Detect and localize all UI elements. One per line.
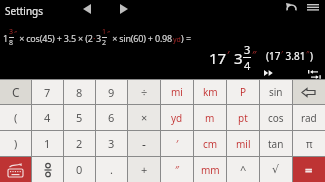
staticText: ′ [176,137,179,151]
button[interactable]: ′ [161,131,193,156]
staticText: π [306,137,313,151]
staticText: m [205,111,215,125]
staticText: ( [14,110,18,125]
staticText: ′ [281,49,283,60]
button[interactable]: = [293,157,325,182]
staticText: = [305,161,313,179]
staticText: (17 [266,49,281,63]
button[interactable] [264,70,273,76]
button[interactable]: × [128,105,160,130]
button[interactable]: m [194,105,226,130]
button[interactable]: π [293,131,325,156]
button[interactable]: cos [260,105,292,130]
staticText: P [240,85,247,99]
button[interactable]: cm [194,131,226,156]
staticText: - [142,136,146,152]
button[interactable]: Settings [0,0,70,20]
button[interactable]: ^ [227,157,259,182]
button[interactable]: 1 [32,131,63,156]
staticText: ) = [181,32,192,44]
staticText: 6 [108,110,115,125]
button[interactable] [120,4,128,14]
button[interactable]: - [128,131,160,156]
staticText: ÷ [141,85,148,100]
button[interactable]: sin [260,80,292,104]
staticText: ) [310,49,313,63]
button[interactable]: 5 [64,105,95,130]
button[interactable]: ÷ [128,80,160,104]
staticText: 3 [96,32,102,44]
staticText: 1 [102,27,107,37]
staticText: Settings [5,4,44,18]
button[interactable]: 9 [96,80,127,104]
staticText: mil [236,137,251,151]
button[interactable]: 4 [32,105,63,130]
staticText: cos [268,111,284,125]
staticText: + [141,162,148,177]
button[interactable]: yd [161,105,193,130]
staticText: ) [14,136,18,151]
button[interactable]: C [0,80,31,104]
staticText: 3 [244,42,251,57]
staticText: 8 [76,85,83,100]
staticText: rad [301,111,317,125]
staticText: 3 [230,48,243,68]
staticText: ″ [14,29,17,39]
staticText: × sin(60) + 0.98 [110,32,173,44]
button[interactable]: 2 [64,131,95,156]
staticText: ″ [107,29,110,39]
staticText: C [12,84,20,100]
button[interactable]: rad [293,105,325,130]
staticText: 3 [9,27,14,37]
staticText: 1 [3,32,9,44]
button[interactable]: 8 [64,80,95,104]
staticText: mi [171,85,183,99]
button[interactable]: 0 [64,157,95,182]
button[interactable]: 6 [96,105,127,130]
button[interactable]: mil [227,131,259,156]
button[interactable]: ( [0,105,31,130]
button[interactable] [286,3,298,13]
staticText: √ [272,163,280,176]
staticText: 7 [44,85,51,100]
staticText: 4 [244,58,251,73]
button[interactable]: 7 [32,80,63,104]
staticText: km [203,85,218,99]
staticText: tan [268,137,284,151]
button[interactable] [83,4,91,14]
staticText: 9 [108,85,115,100]
button[interactable]: km [194,80,226,104]
button[interactable]: . [96,157,127,182]
button[interactable]: tan [260,131,292,156]
button[interactable] [0,157,31,182]
staticText: pt [238,111,248,125]
button[interactable]: pt [227,105,259,130]
button[interactable] [307,4,319,11]
staticText: 2 [102,38,107,48]
staticText: · [93,32,96,44]
staticText: × [141,110,148,125]
button[interactable]: mi [161,80,193,104]
staticText: mm [201,163,220,177]
staticText: ″ [252,47,257,62]
staticText: ′ [227,47,230,62]
button[interactable]: P [227,80,259,104]
button[interactable]: + [128,157,160,182]
button[interactable] [32,157,63,182]
staticText: 2 [76,136,83,151]
staticText: cm [203,137,218,151]
button[interactable] [308,70,321,79]
button[interactable]: mm [194,157,226,182]
staticText: 0 [76,162,83,177]
staticText: 1 [44,136,51,151]
staticText: . [110,162,113,177]
button[interactable] [293,80,325,104]
staticText: 3.81 [283,49,306,63]
staticText: ″ [306,49,310,60]
button[interactable]: ) [0,131,31,156]
button[interactable]: 3 [96,131,127,156]
staticText: ^ [240,162,247,177]
button[interactable]: ″ [161,157,193,182]
button[interactable]: √ [260,157,292,182]
staticText: 17 [209,48,227,68]
